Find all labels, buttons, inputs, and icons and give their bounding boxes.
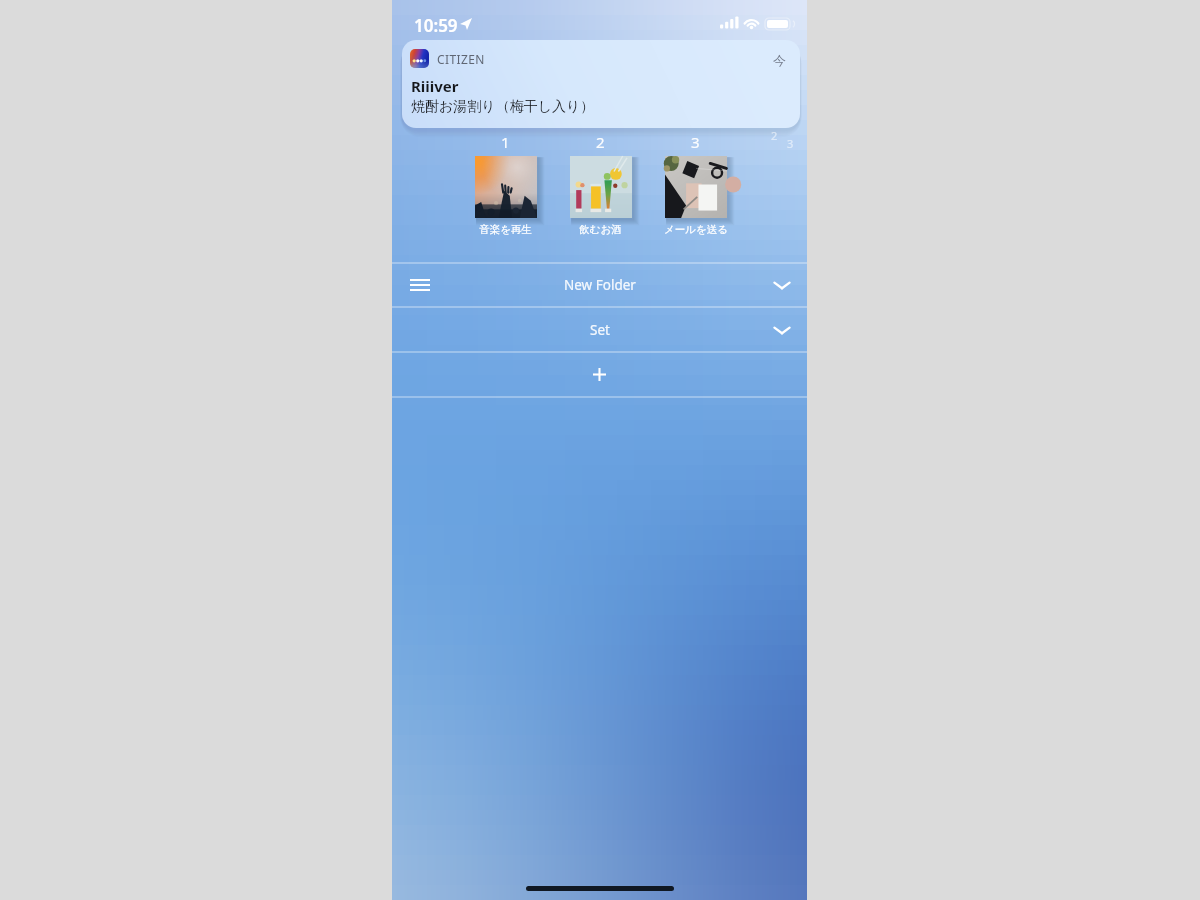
other: Expand [772,320,792,340]
button[interactable]: メールを送る [648,156,743,236]
button[interactable]: 飲むお酒 [553,156,648,236]
button[interactable]: Menu [392,264,807,306]
other: Menu [410,278,430,292]
staticText: 音楽を再生 [479,223,532,236]
staticText: 1 [501,132,510,152]
staticText: New Folder [564,276,636,294]
button[interactable]: Add [392,353,807,396]
staticText: 3 [691,132,700,152]
staticText: 飲むお酒 [579,223,622,236]
staticText: CITIZEN [437,51,485,67]
staticText: メールを送る [664,223,728,236]
button[interactable]: CITIZEN [402,40,800,128]
staticText: Set [590,321,610,339]
button[interactable]: Set [392,308,807,351]
staticText: 2 [771,128,778,143]
staticText: Riiiver [411,76,459,96]
staticText: 焼酎お湯割り（梅干し入り） [411,98,595,116]
other: Expand [772,275,792,295]
staticText: 今 [773,52,786,68]
staticText: 3 [787,136,794,151]
button[interactable]: 音楽を再生 [458,156,553,236]
staticText: 2 [596,132,605,152]
staticText: 10:59 [414,14,458,37]
